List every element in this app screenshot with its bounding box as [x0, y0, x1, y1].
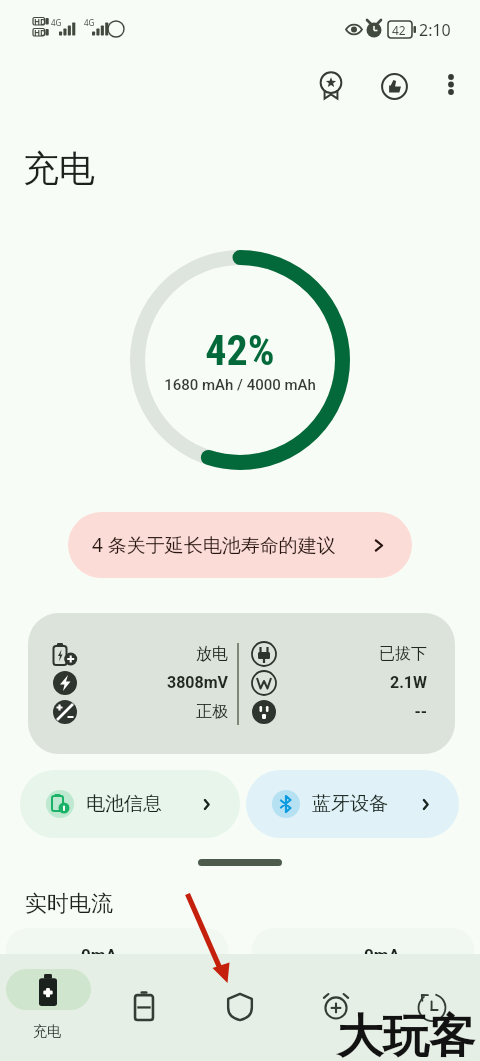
- button[interactable]: 蓝牙设备: [246, 770, 459, 838]
- button[interactable]: History: [384, 954, 480, 1061]
- button[interactable]: Like: [370, 62, 418, 110]
- staticText: 电池信息: [86, 792, 162, 816]
- staticText: 2.1W: [267, 673, 427, 692]
- staticText: HD: [34, 16, 46, 27]
- button[interactable]: Awards: [307, 62, 355, 110]
- staticText: 42%: [130, 326, 350, 375]
- staticText: 1680 mAh / 4000 mAh: [130, 376, 350, 394]
- staticText: 3808mV: [68, 673, 228, 692]
- staticText: 0mA: [364, 945, 400, 965]
- staticText: 4 条关于延长电池寿命的建议: [92, 532, 336, 558]
- staticText: 大玩客: [337, 1008, 475, 1061]
- staticText: 4G: [51, 17, 62, 28]
- button[interactable]: Protection: [192, 954, 288, 1061]
- button[interactable]: 电池信息: [20, 770, 240, 838]
- button[interactable]: Battery usage: [96, 954, 192, 1061]
- staticText: 正极: [68, 702, 228, 722]
- staticText: 蓝牙设备: [312, 792, 388, 816]
- staticText: --: [267, 702, 427, 721]
- staticText: 充电: [23, 146, 95, 191]
- staticText: 0mA: [81, 945, 117, 965]
- staticText: 已拔下: [267, 644, 427, 664]
- button[interactable]: More options: [430, 62, 472, 104]
- staticText: HD: [34, 27, 46, 38]
- staticText: 充电: [33, 1023, 61, 1041]
- staticText: 4G: [84, 17, 95, 28]
- staticText: 42: [392, 22, 406, 38]
- staticText: 放电: [68, 644, 228, 664]
- button[interactable]: 充电: [0, 954, 96, 1061]
- staticText: 2:10: [419, 19, 451, 41]
- staticText: 实时电流: [25, 890, 113, 918]
- button[interactable]: 4 条关于延长电池寿命的建议: [68, 512, 412, 578]
- button[interactable]: Alarm: [288, 954, 384, 1061]
